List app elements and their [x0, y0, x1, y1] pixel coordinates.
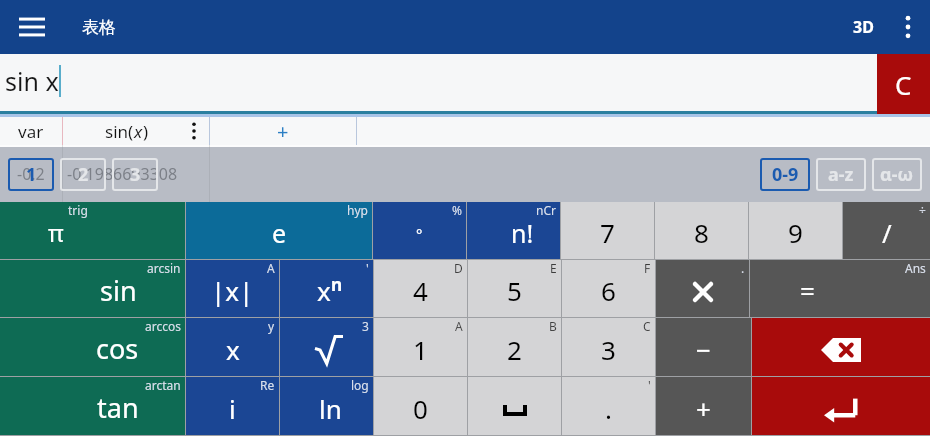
button[interactable]: D — [374, 260, 467, 317]
button[interactable]: 9 — [749, 202, 842, 259]
staticText: a-z — [828, 162, 854, 187]
button[interactable]: + — [656, 377, 751, 435]
staticText: 1 — [413, 332, 428, 367]
button[interactable]: 1 — [8, 158, 54, 191]
staticText: α-ω — [880, 162, 914, 187]
button[interactable]: 0-9 — [760, 158, 810, 191]
button[interactable]: More options — [886, 0, 930, 54]
button[interactable]: arccos — [0, 318, 185, 376]
staticText: arctan — [145, 377, 181, 393]
staticText: 8 — [694, 215, 709, 250]
staticText: e — [272, 216, 287, 250]
staticText: ÷ — [919, 202, 926, 218]
button[interactable]: A — [374, 318, 467, 376]
staticText: ° — [416, 224, 423, 244]
button[interactable]: Add column — [210, 117, 356, 145]
staticText: 9 — [788, 215, 803, 250]
staticText: sin x — [5, 64, 59, 98]
button[interactable]: ' — [280, 260, 373, 317]
staticText: π — [48, 216, 64, 249]
button[interactable]: 3 — [112, 158, 158, 191]
staticText: 3 — [601, 332, 616, 367]
staticText: C — [895, 67, 912, 102]
button[interactable]: Enter — [752, 377, 930, 435]
button[interactable]: 0 — [374, 377, 467, 435]
staticText: / — [882, 215, 892, 250]
button[interactable]: α-ω — [872, 158, 922, 191]
staticText: 表格 — [82, 17, 116, 38]
button[interactable]: arcsin — [0, 260, 185, 317]
button[interactable]: nCr — [467, 202, 560, 259]
staticText: y — [268, 318, 275, 334]
staticText: A — [267, 260, 275, 276]
button[interactable]: hyp — [186, 202, 372, 259]
staticText: 2 — [78, 162, 89, 187]
staticText: 3 — [130, 162, 141, 187]
staticText: nCr — [536, 202, 556, 218]
button[interactable]: Menu — [10, 5, 54, 49]
button[interactable]: Re — [186, 377, 279, 435]
staticText: tan — [97, 389, 139, 426]
staticText: x — [226, 332, 240, 367]
button[interactable]: y — [186, 318, 279, 376]
staticText: hyp — [347, 202, 368, 218]
staticText: trig — [68, 202, 88, 218]
staticText: sin( — [105, 120, 134, 143]
staticText: cos — [96, 330, 139, 367]
staticText: log — [351, 377, 369, 393]
button[interactable]: log — [280, 377, 373, 435]
button[interactable]: C — [562, 318, 655, 376]
button[interactable]: 3 — [280, 318, 373, 376]
button[interactable]: 2 — [60, 158, 106, 191]
staticText: 0 — [413, 391, 428, 426]
staticText: ' — [648, 377, 651, 393]
staticText: F — [644, 260, 651, 276]
staticText: . — [605, 391, 612, 426]
button[interactable]: Backspace — [752, 318, 930, 376]
staticText: E — [550, 260, 557, 276]
staticText: i — [229, 391, 236, 426]
staticText: 3D — [853, 16, 874, 38]
staticText: x — [134, 120, 143, 143]
staticText: 6 — [601, 273, 616, 308]
staticText: n — [331, 273, 343, 296]
staticText: arccos — [145, 318, 181, 334]
staticText: + — [696, 391, 711, 426]
button[interactable]: E — [468, 260, 561, 317]
staticText: 1 — [26, 162, 37, 187]
staticText: A — [455, 318, 463, 334]
staticText: 7 — [600, 215, 615, 250]
staticText: |x| — [211, 273, 254, 308]
staticText: % — [452, 202, 462, 218]
button[interactable]: Column options — [185, 117, 203, 145]
button[interactable]: 7 — [561, 202, 654, 259]
staticText: Re — [260, 377, 275, 393]
button[interactable] — [468, 377, 561, 435]
button[interactable]: % — [373, 202, 466, 259]
button[interactable]: F — [562, 260, 655, 317]
staticText: 5 — [507, 273, 522, 308]
staticText: -0.2 — [17, 163, 45, 185]
button[interactable]: arctan — [0, 377, 185, 435]
staticText: -0.1986693308 — [67, 163, 178, 185]
button[interactable]: A — [186, 260, 279, 317]
staticText: ' — [366, 260, 369, 276]
button[interactable]: Ans — [750, 260, 930, 317]
button[interactable]: ÷ — [843, 202, 930, 259]
staticText: + — [277, 118, 289, 145]
staticText: n! — [511, 216, 534, 250]
staticText: ln — [319, 391, 342, 426]
button[interactable]: − — [656, 318, 751, 376]
button[interactable]: ' — [562, 377, 655, 435]
button[interactable]: a-z — [816, 158, 866, 191]
button[interactable]: 8 — [655, 202, 748, 259]
button[interactable]: trig — [0, 202, 92, 259]
button[interactable]: B — [468, 318, 561, 376]
staticText: var — [18, 120, 44, 143]
button[interactable]: sin x — [0, 54, 877, 114]
staticText: ) — [143, 120, 149, 143]
staticText: 2 — [507, 332, 522, 367]
button[interactable]: 3D — [841, 0, 886, 54]
button[interactable]: . — [656, 260, 749, 317]
button[interactable]: C — [877, 54, 930, 114]
